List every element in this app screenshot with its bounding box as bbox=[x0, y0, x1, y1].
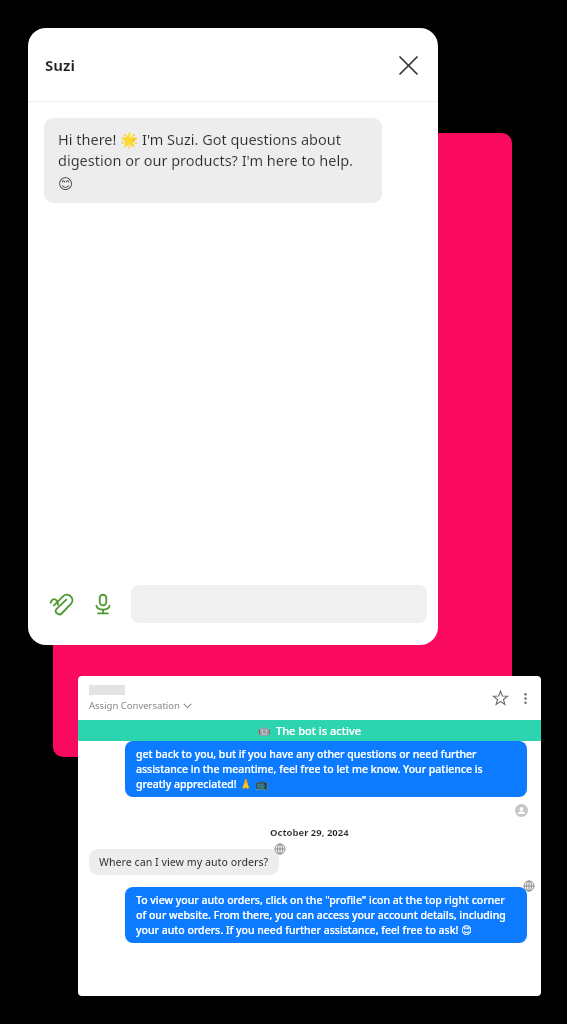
button[interactable]: Favorite bbox=[486, 684, 514, 712]
button[interactable]: More options bbox=[514, 687, 536, 709]
button[interactable]: get back to you, but if you have any oth… bbox=[125, 741, 527, 797]
button[interactable]: Where can I view my auto orders? bbox=[89, 849, 279, 875]
staticText: 🤖 bbox=[258, 725, 271, 737]
button[interactable]: Assign Conversation bbox=[89, 699, 191, 712]
staticText: To view your auto orders, click on the "… bbox=[136, 893, 516, 937]
staticText: Assign Conversation bbox=[89, 699, 180, 712]
button[interactable]: 🤖 bbox=[78, 720, 541, 741]
button[interactable]: Close bbox=[391, 48, 425, 82]
staticText: October 29, 2024 bbox=[270, 826, 349, 839]
staticText: The bot is active bbox=[276, 723, 362, 738]
staticText: Suzi bbox=[45, 55, 75, 75]
staticText: get back to you, but if you have any oth… bbox=[136, 747, 516, 791]
button[interactable]: Hi there! 🌟 I'm Suzi. Got questions abou… bbox=[44, 118, 382, 203]
button[interactable]: Voice message bbox=[83, 584, 123, 624]
staticText: Hi there! 🌟 I'm Suzi. Got questions abou… bbox=[58, 129, 368, 192]
button[interactable]: Attach file bbox=[41, 584, 81, 624]
button[interactable]: To view your auto orders, click on the "… bbox=[125, 887, 527, 943]
staticText: Where can I view my auto orders? bbox=[99, 855, 269, 869]
